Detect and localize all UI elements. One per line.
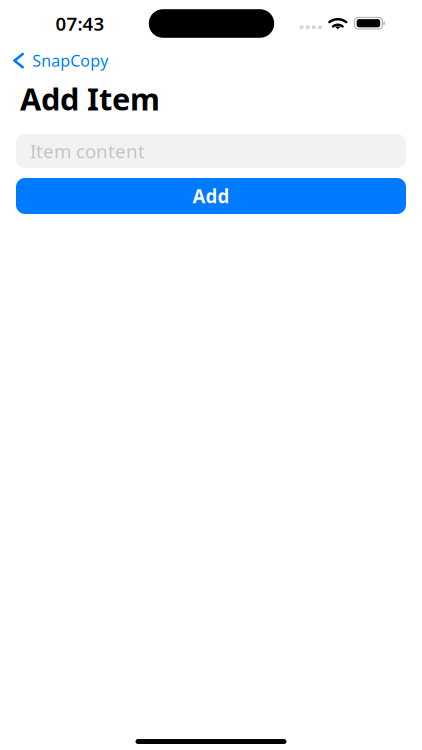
staticText: Item content [30,139,145,163]
staticText: Add Item [20,78,160,119]
staticText: 07:43 [55,11,104,36]
button[interactable]: Item content [16,134,406,168]
staticText: Add [192,184,229,208]
button[interactable]: Add [16,178,406,214]
button[interactable]: Back to SnapCopy [0,45,118,74]
staticText: SnapCopy [32,50,108,71]
